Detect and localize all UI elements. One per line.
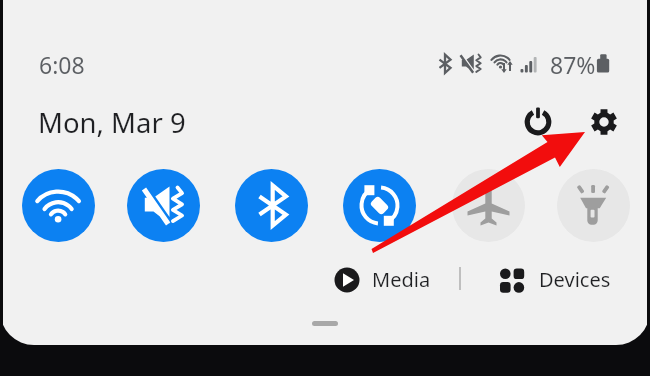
button[interactable]: Flashlight: [557, 169, 630, 242]
button[interactable]: Airplane mode: [452, 169, 525, 242]
button[interactable]: Media: [334, 266, 431, 293]
button[interactable]: Power: [518, 102, 558, 142]
button[interactable]: Auto rotate: [343, 169, 416, 242]
button[interactable]: Wi-Fi: [22, 169, 95, 242]
staticText: Media: [372, 266, 431, 293]
button[interactable]: Devices: [500, 266, 611, 293]
button[interactable]: Mute: [127, 169, 200, 242]
staticText: 87%: [550, 49, 596, 80]
button[interactable]: Bluetooth: [235, 169, 308, 242]
staticText: 6:08: [39, 49, 85, 80]
staticText: Mon, Mar 9: [38, 104, 186, 141]
button[interactable]: Settings: [584, 102, 624, 142]
staticText: Devices: [539, 266, 611, 293]
